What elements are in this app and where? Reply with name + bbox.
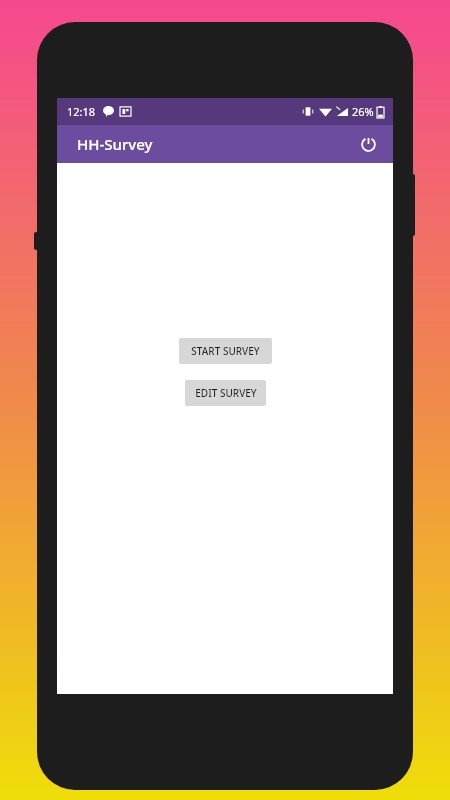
button[interactable]: Power / Logout [351, 127, 385, 161]
staticText: 26% [352, 104, 374, 119]
staticText: START SURVEY [191, 344, 260, 358]
button[interactable]: EDIT SURVEY [185, 380, 266, 406]
staticText: 12:18 [67, 104, 96, 119]
staticText: EDIT SURVEY [195, 386, 257, 400]
button[interactable]: START SURVEY [179, 338, 272, 364]
staticText: HH-Survey [77, 134, 153, 154]
